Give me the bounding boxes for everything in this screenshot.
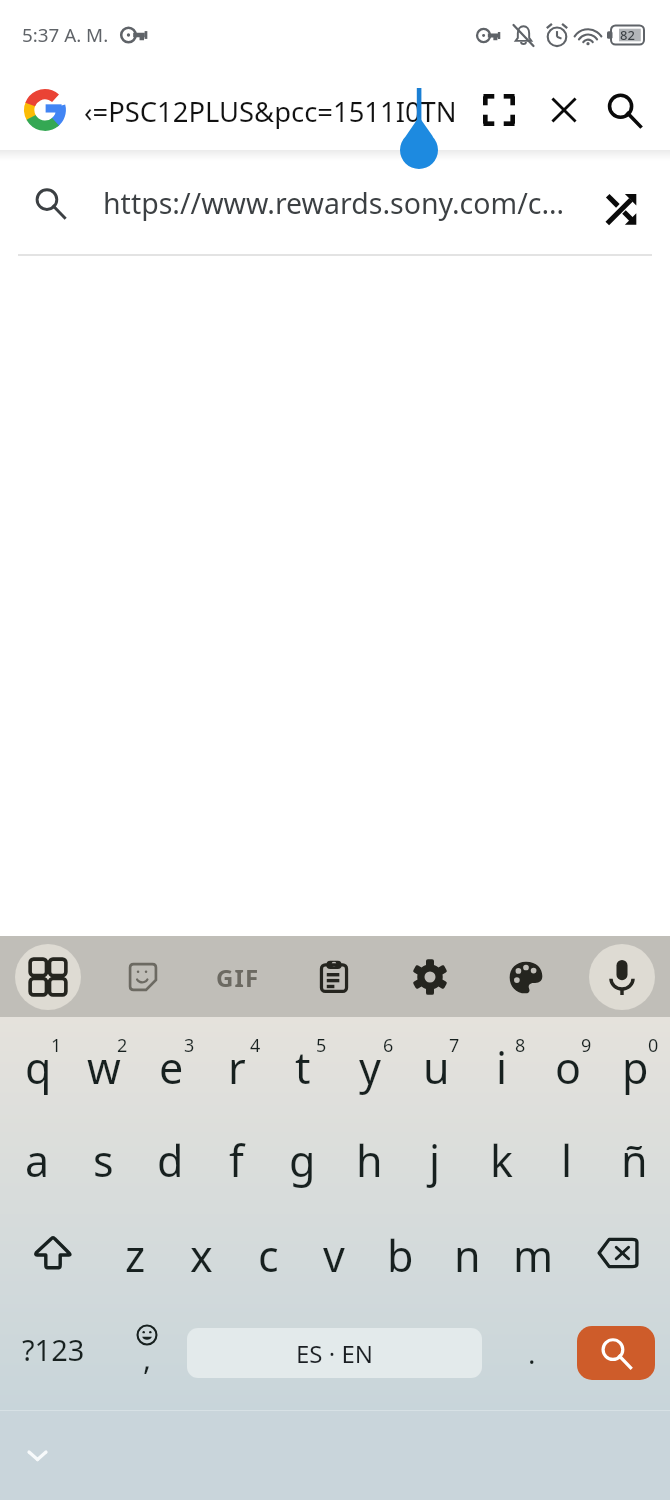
staticText: q bbox=[25, 1038, 52, 1097]
button[interactable]: Shift bbox=[0, 1213, 100, 1293]
staticText: y bbox=[359, 1038, 381, 1097]
button[interactable]: u bbox=[399, 1031, 465, 1111]
staticText: b bbox=[387, 1226, 414, 1285]
staticText: , bbox=[143, 1338, 152, 1379]
staticText: 4 bbox=[250, 1033, 261, 1058]
button[interactable]: n bbox=[434, 1215, 500, 1295]
button[interactable]: Hide keyboard bbox=[12, 1430, 62, 1480]
staticText: l bbox=[561, 1131, 573, 1190]
button[interactable]: k bbox=[468, 1120, 534, 1200]
button[interactable]: Settings bbox=[397, 944, 463, 1010]
staticText: ?123 bbox=[22, 1330, 85, 1369]
staticText: n bbox=[454, 1226, 481, 1285]
button[interactable]: Scan with camera bbox=[474, 80, 534, 140]
staticText: s bbox=[93, 1131, 114, 1190]
staticText: 5:37 A. M. bbox=[22, 22, 109, 48]
button[interactable]: Stickers bbox=[110, 944, 176, 1010]
button[interactable]: s bbox=[70, 1120, 136, 1200]
button[interactable]: Clear text bbox=[534, 80, 594, 140]
staticText: 5 bbox=[316, 1033, 327, 1058]
staticText: ñ bbox=[621, 1131, 648, 1190]
button[interactable]: Voice input bbox=[589, 944, 655, 1010]
button[interactable]: q bbox=[1, 1031, 67, 1111]
button[interactable]: z bbox=[102, 1215, 168, 1295]
staticText: ES · EN bbox=[296, 1337, 374, 1370]
button[interactable]: p bbox=[598, 1031, 664, 1111]
button[interactable]: Clipboard bbox=[301, 944, 367, 1010]
button[interactable]: Backspace bbox=[569, 1213, 670, 1293]
staticText: o bbox=[555, 1038, 582, 1097]
staticText: u bbox=[423, 1038, 450, 1097]
button[interactable]: v bbox=[301, 1215, 367, 1295]
staticText: GIF bbox=[216, 961, 260, 994]
staticText: m bbox=[513, 1226, 554, 1285]
button[interactable]: o bbox=[531, 1031, 597, 1111]
staticText: r bbox=[228, 1038, 246, 1097]
button[interactable]: y bbox=[333, 1031, 399, 1111]
button[interactable]: c bbox=[235, 1215, 301, 1295]
staticText: i bbox=[496, 1038, 508, 1097]
staticText: e bbox=[159, 1038, 184, 1097]
button[interactable]: e bbox=[134, 1031, 200, 1111]
button[interactable]: g bbox=[269, 1120, 335, 1200]
button[interactable]: f bbox=[203, 1120, 269, 1200]
button[interactable]: j bbox=[402, 1120, 468, 1200]
staticText: k bbox=[490, 1131, 513, 1190]
button[interactable]: Themes bbox=[493, 944, 559, 1010]
button[interactable]: Search bbox=[594, 80, 654, 140]
button[interactable]: GIF bbox=[205, 944, 271, 1010]
button[interactable]: a bbox=[4, 1120, 70, 1200]
button[interactable]: l bbox=[534, 1120, 600, 1200]
staticText: 8 bbox=[515, 1033, 526, 1058]
staticText: 2 bbox=[117, 1033, 128, 1058]
button[interactable]: Apps bbox=[15, 944, 81, 1010]
button[interactable]: d bbox=[137, 1120, 203, 1200]
staticText: z bbox=[125, 1226, 146, 1285]
staticText: d bbox=[157, 1131, 184, 1190]
staticText: 82 bbox=[620, 26, 635, 44]
button[interactable]: b bbox=[367, 1215, 433, 1295]
button[interactable]: ES · EN bbox=[187, 1328, 482, 1378]
staticText: 3 bbox=[184, 1033, 195, 1058]
staticText: f bbox=[229, 1131, 244, 1190]
staticText: p bbox=[622, 1038, 649, 1097]
button[interactable]: Search bbox=[577, 1326, 655, 1380]
staticText: v bbox=[323, 1226, 345, 1285]
button[interactable]: Emoji bbox=[106, 1303, 186, 1403]
button[interactable]: h bbox=[336, 1120, 402, 1200]
staticText: . bbox=[528, 1334, 536, 1372]
button[interactable]: . bbox=[492, 1303, 572, 1403]
button[interactable]: r bbox=[200, 1031, 266, 1111]
staticText: ‹=PSC12PLUS&pcc=1511I0TN bbox=[84, 93, 457, 130]
staticText: 7 bbox=[449, 1033, 460, 1058]
staticText: x bbox=[190, 1226, 213, 1285]
staticText: a bbox=[25, 1131, 50, 1190]
button[interactable]: t bbox=[266, 1031, 332, 1111]
staticText: c bbox=[258, 1226, 279, 1285]
staticText: https://www.rewards.sony.com/c… bbox=[103, 184, 596, 223]
staticText: w bbox=[87, 1038, 121, 1097]
button[interactable]: i bbox=[465, 1031, 531, 1111]
button[interactable]: w bbox=[67, 1031, 133, 1111]
button[interactable]: ñ bbox=[601, 1120, 667, 1200]
staticText: h bbox=[356, 1131, 383, 1190]
button[interactable]: Insert suggestion bbox=[596, 171, 660, 235]
staticText: 6 bbox=[383, 1033, 394, 1058]
button[interactable]: x bbox=[168, 1215, 234, 1295]
staticText: 0 bbox=[648, 1033, 659, 1058]
button[interactable]: ?123 bbox=[0, 1299, 106, 1399]
staticText: j bbox=[429, 1131, 441, 1190]
staticText: t bbox=[295, 1038, 311, 1097]
staticText: g bbox=[289, 1131, 316, 1190]
button[interactable]: m bbox=[500, 1215, 566, 1295]
button[interactable]: https://www.rewards.sony.com/c… bbox=[0, 150, 670, 256]
staticText: 9 bbox=[581, 1033, 592, 1058]
staticText: 1 bbox=[51, 1033, 62, 1058]
